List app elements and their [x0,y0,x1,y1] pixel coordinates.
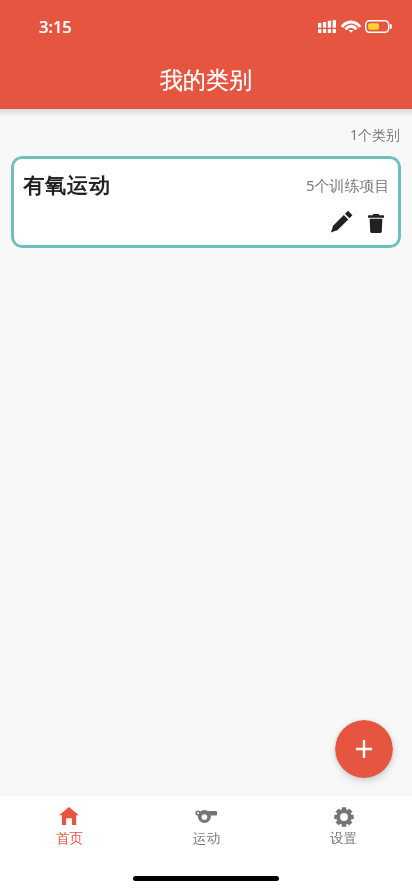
button[interactable]: 有氧运动 [11,156,401,248]
staticText: 5个训练项目 [306,175,390,195]
staticText: 首页 [56,830,83,847]
button[interactable]: 首页 [0,793,138,847]
button[interactable]: 设置 [275,793,412,847]
button[interactable]: Edit [328,211,352,235]
staticText: 运动 [193,830,220,847]
staticText: 1个类别 [0,125,400,144]
button[interactable]: Add category [335,720,393,778]
staticText: 3:15 [39,15,72,37]
staticText: 设置 [330,830,357,847]
staticText: 我的类别 [160,66,252,95]
button[interactable]: 运动 [138,793,275,847]
button[interactable]: Delete [364,211,388,235]
staticText: 有氧运动 [23,173,111,199]
